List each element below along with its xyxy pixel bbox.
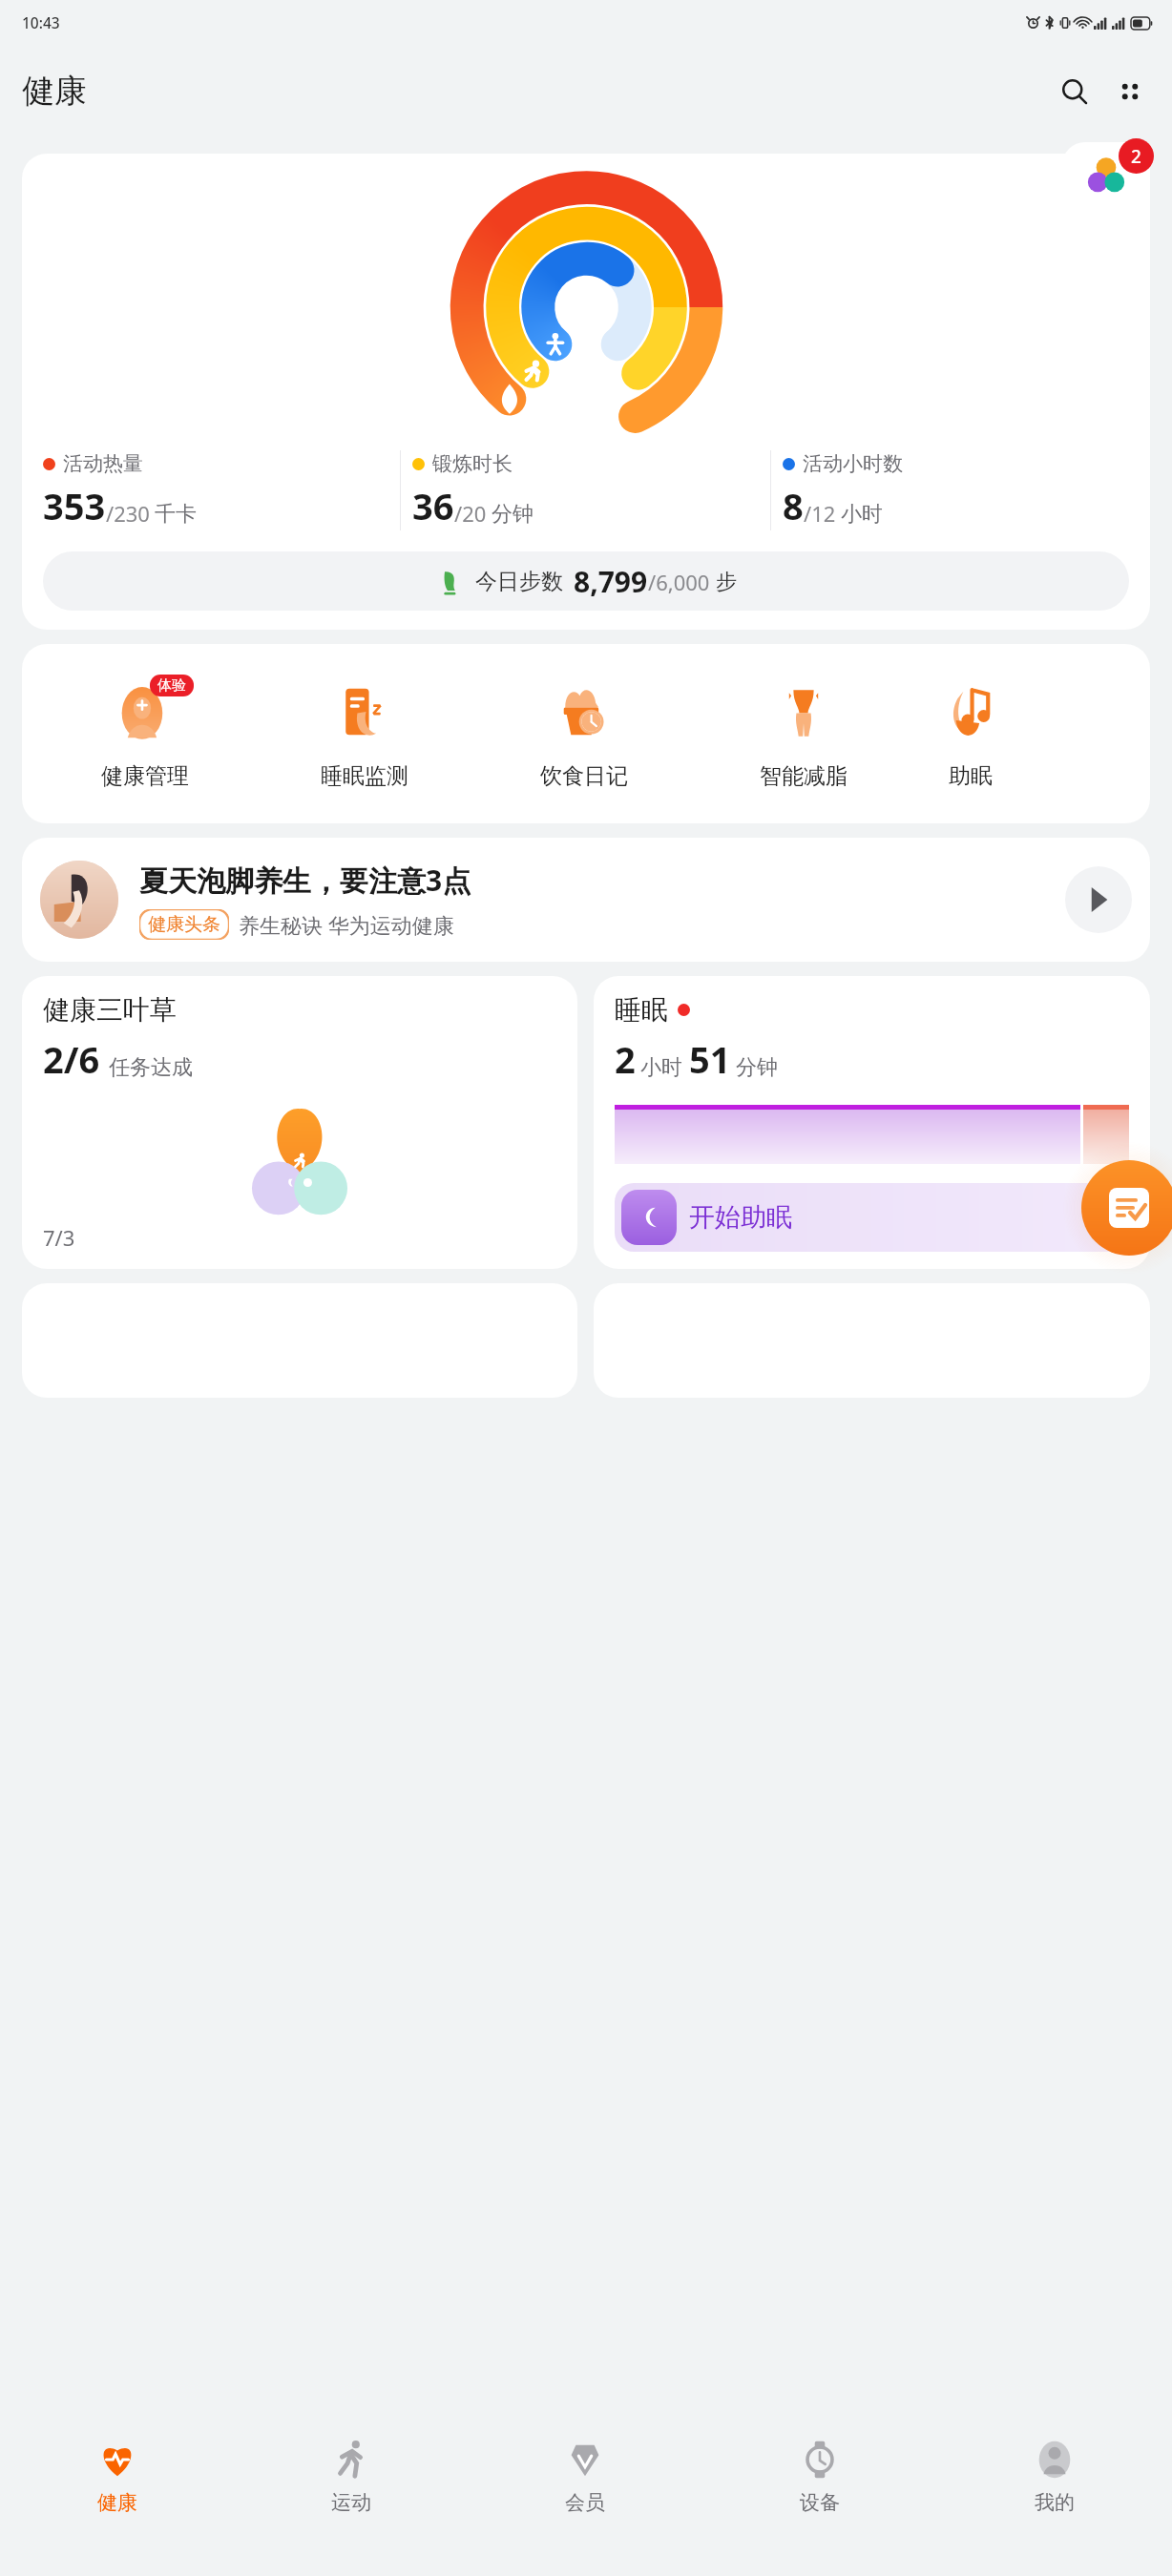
staticText: 分钟 <box>736 1054 778 1081</box>
staticText: 健康三叶草 <box>43 993 177 1027</box>
staticText: 小时 <box>640 1054 682 1081</box>
button[interactable]: 设备 <box>702 2416 937 2576</box>
button[interactable]: 开始助眠 <box>615 1183 1129 1252</box>
button[interactable]: 健康三叶草 <box>22 976 577 1269</box>
staticText: 体验 <box>157 676 186 695</box>
staticText: 锻炼时长 <box>432 451 513 476</box>
staticText: /20 <box>454 499 487 528</box>
button[interactable]: 智能减脂 <box>694 644 913 823</box>
button[interactable]: 今日步数 <box>43 551 1129 611</box>
staticText: 会员 <box>565 2490 605 2515</box>
staticText: 健康 <box>97 2490 137 2515</box>
staticText: 10:43 <box>22 12 60 32</box>
staticText: 睡眠监测 <box>321 762 408 790</box>
staticText: 步 <box>716 569 737 595</box>
staticText: 助眠 <box>949 762 993 790</box>
staticText: 353 <box>43 481 106 530</box>
button[interactable]: 会员 <box>468 2416 702 2576</box>
staticText: 2 <box>1131 144 1141 169</box>
staticText: 任务达成 <box>109 1054 193 1081</box>
staticText: 7/3 <box>43 1223 75 1252</box>
staticText: 活动热量 <box>63 451 143 476</box>
staticText: 2/6 <box>43 1034 100 1084</box>
button[interactable]: Play <box>1065 866 1132 933</box>
button[interactable]: Achievements <box>1062 142 1150 206</box>
button[interactable]: Add record <box>1081 1160 1172 1256</box>
button[interactable]: 助眠 <box>913 644 1028 823</box>
staticText: 睡眠 <box>615 993 668 1027</box>
button[interactable]: Search <box>1050 67 1099 116</box>
staticText: 开始助眠 <box>689 1201 792 1234</box>
staticText: 设备 <box>800 2490 840 2515</box>
staticText: 36 <box>412 481 454 530</box>
staticText: /230 <box>106 499 150 528</box>
staticText: 8 <box>783 481 804 530</box>
staticText: 夏天泡脚养生，要注意3点 <box>139 861 471 900</box>
staticText: 2 <box>615 1034 636 1084</box>
staticText: 智能减脂 <box>760 762 848 790</box>
button[interactable]: 睡眠监测 <box>255 644 474 823</box>
staticText: 千卡 <box>155 501 197 528</box>
staticText: 8,799 <box>574 562 648 601</box>
staticText: 小时 <box>841 501 883 528</box>
staticText: 活动小时数 <box>803 451 903 476</box>
staticText: 健康 <box>22 71 87 112</box>
staticText: 健康头条 <box>148 913 220 936</box>
button[interactable]: 饮食日记 <box>474 644 694 823</box>
staticText: 运动 <box>331 2490 371 2515</box>
staticText: 分钟 <box>492 501 534 528</box>
button[interactable]: 运动 <box>234 2416 468 2576</box>
button[interactable]: 健康 <box>0 2416 234 2576</box>
staticText: 51 <box>689 1034 731 1084</box>
button[interactable]: 活动热量 <box>22 154 1150 630</box>
button[interactable]: More options <box>1105 67 1155 116</box>
button[interactable]: 体验 <box>35 644 255 823</box>
staticText: 健康管理 <box>101 762 189 790</box>
staticText: 养生秘诀 华为运动健康 <box>239 910 454 939</box>
button[interactable]: 夏天泡脚养生，要注意3点 <box>22 838 1150 962</box>
button[interactable]: 睡眠 <box>594 976 1150 1269</box>
staticText: /6,000 <box>648 568 710 596</box>
staticText: /12 <box>804 499 836 528</box>
staticText: 饮食日记 <box>540 762 628 790</box>
button[interactable]: 我的 <box>937 2416 1172 2576</box>
staticText: 我的 <box>1035 2490 1075 2515</box>
staticText: 今日步数 <box>475 568 563 595</box>
